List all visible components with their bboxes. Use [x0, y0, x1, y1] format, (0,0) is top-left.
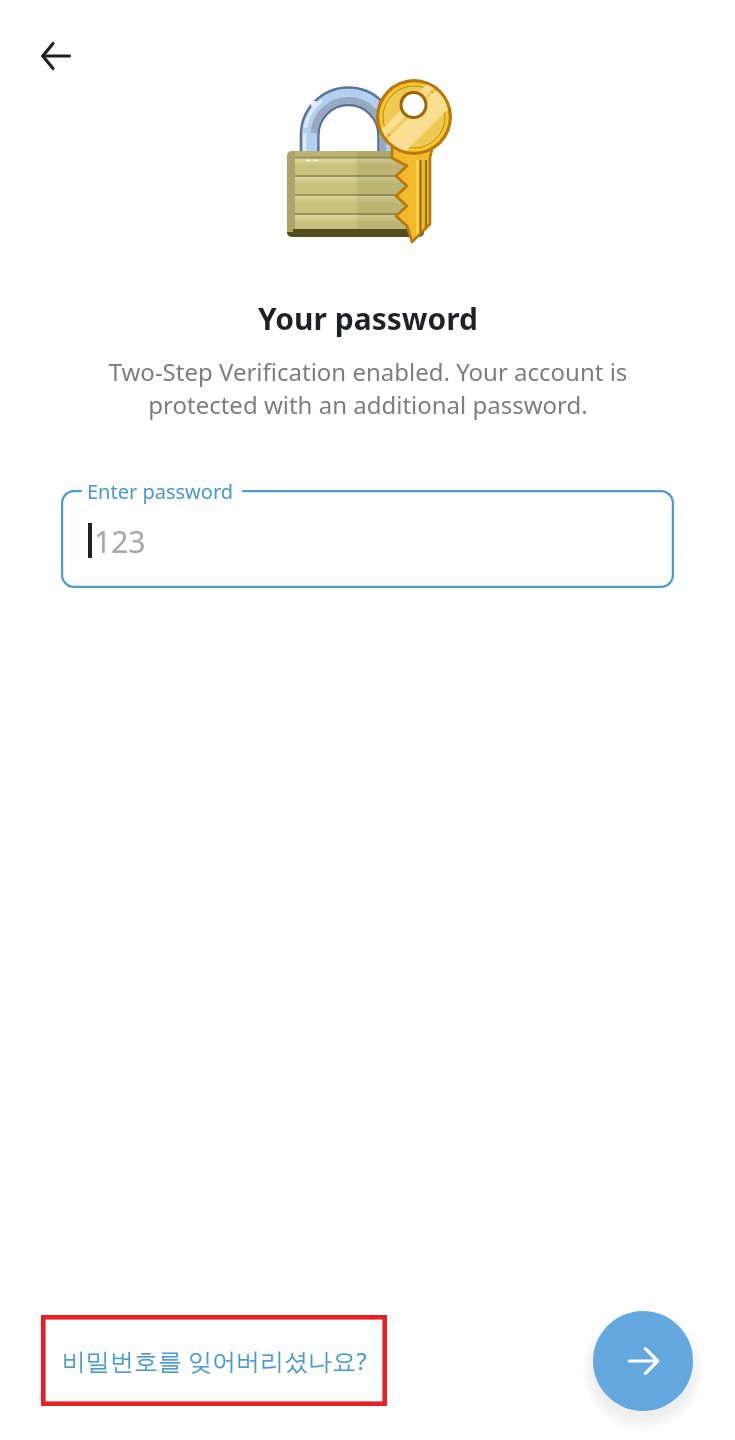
staticText: Two-Step Verification enabled. Your acco…	[88, 355, 648, 421]
staticText: Enter password	[87, 478, 234, 505]
staticText: Your password	[258, 298, 478, 339]
button[interactable]: Back	[28, 28, 84, 84]
button[interactable]: Enter password	[61, 490, 674, 588]
staticText: 비밀번호를 잊어버리셨나요?	[62, 1344, 367, 1377]
staticText: 123	[94, 521, 146, 562]
button[interactable]: Next	[593, 1311, 693, 1411]
button[interactable]: 비밀번호를 잊어버리셨나요?	[41, 1315, 387, 1406]
